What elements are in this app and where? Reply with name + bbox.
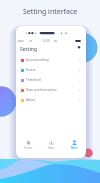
staticText: Threshold	[26, 78, 41, 82]
button[interactable]: Home	[16, 136, 40, 154]
staticText: Data	[48, 146, 55, 150]
button[interactable]: Data synchronization	[16, 85, 86, 95]
staticText: Setting interface	[23, 7, 78, 17]
button[interactable]: Data	[40, 136, 63, 154]
button[interactable]: Account setting	[16, 55, 86, 65]
button[interactable]: About	[16, 95, 86, 105]
staticText: About	[26, 98, 35, 102]
staticText: Mine	[71, 146, 78, 150]
button[interactable]: Device	[16, 65, 86, 75]
staticText: Device	[26, 68, 36, 72]
button[interactable]: Threshold	[16, 75, 86, 85]
button[interactable]: Mine	[63, 136, 86, 154]
staticText: 12:30	[42, 39, 50, 43]
staticText: Home	[24, 146, 32, 150]
staticText: Setting	[20, 46, 38, 53]
staticText: Data synchronization	[26, 88, 57, 92]
staticText: Account setting	[26, 58, 49, 62]
